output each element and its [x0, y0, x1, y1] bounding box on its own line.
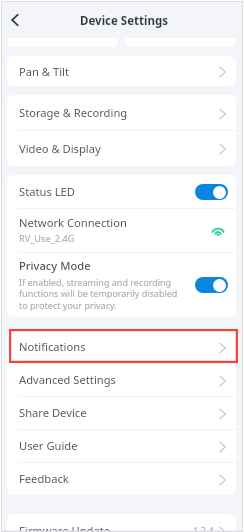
button[interactable]: Back: [1, 6, 29, 34]
other: Open: [218, 473, 226, 487]
other: Open: [218, 107, 226, 121]
button[interactable]: Status LED: [7, 175, 236, 208]
button[interactable]: Storage & Recording: [7, 95, 236, 130]
other: Open: [218, 440, 226, 454]
button[interactable]: Toggle: [195, 277, 228, 293]
button[interactable]: Firmware Update: [7, 514, 236, 532]
other: Open: [218, 374, 226, 388]
staticText: Notifications: [19, 339, 86, 354]
button[interactable]: Privacy Mode: [7, 252, 236, 317]
staticText: Device Settings: [80, 13, 168, 29]
staticText: Privacy Mode: [19, 258, 91, 273]
button[interactable]: Notifications: [7, 330, 236, 363]
button[interactable]: Share Device: [7, 396, 236, 429]
staticText: Feedback: [19, 471, 69, 486]
staticText: If enabled, streaming and recording func…: [19, 276, 178, 312]
button[interactable]: Network Connection: [7, 208, 236, 252]
button[interactable]: Advanced Settings: [7, 363, 236, 396]
other: Open: [218, 407, 226, 421]
button[interactable]: Toggle: [195, 184, 228, 200]
button[interactable]: Pan & Tilt: [7, 56, 236, 86]
button[interactable]: User Guide: [7, 429, 236, 462]
staticText: Video & Display: [19, 141, 101, 156]
other: Open: [218, 341, 226, 355]
button[interactable]: Video & Display: [7, 130, 236, 166]
staticText: 1.2.4: [193, 524, 214, 532]
staticText: Share Device: [19, 405, 87, 420]
staticText: Pan & Tilt: [19, 64, 69, 79]
other: Open: [218, 142, 226, 156]
other: Open: [218, 525, 226, 532]
button[interactable]: Feedback: [7, 462, 236, 495]
staticText: Storage & Recording: [19, 105, 128, 120]
staticText: Network Connection: [19, 215, 127, 230]
staticText: User Guide: [19, 438, 78, 453]
staticText: RV_Use_2.4G: [19, 232, 75, 245]
staticText: Firmware Update: [19, 523, 111, 532]
staticText: Status LED: [19, 184, 75, 199]
other: Wi-Fi connected: [210, 225, 226, 237]
staticText: Advanced Settings: [19, 372, 116, 387]
other: Open: [218, 65, 226, 79]
